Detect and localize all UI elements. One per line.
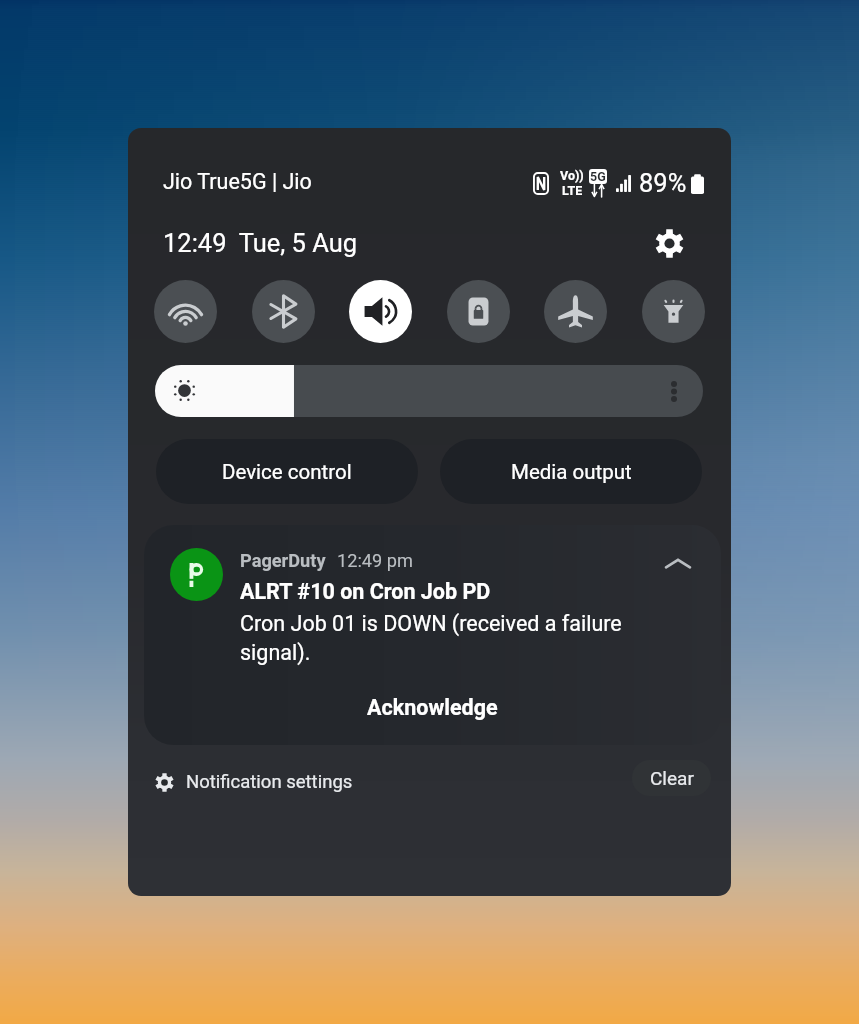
staticText: LTE bbox=[562, 183, 583, 198]
button[interactable]: Clear bbox=[632, 760, 711, 796]
button[interactable]: Settings bbox=[651, 225, 687, 261]
button[interactable]: Wi-Fi bbox=[154, 280, 217, 343]
button[interactable]: Brightness bbox=[155, 365, 703, 417]
staticText: Device control bbox=[222, 460, 352, 484]
staticText: Notification settings bbox=[186, 771, 353, 793]
staticText: 12:49 Tue, 5 Aug bbox=[163, 228, 358, 258]
staticText: Jio True5G | Jio bbox=[163, 169, 312, 194]
staticText: ALRT #10 on Cron Job PD bbox=[240, 579, 491, 604]
button[interactable]: Screen lock bbox=[447, 280, 510, 343]
button[interactable]: Acknowledge bbox=[144, 683, 721, 731]
button[interactable]: Airplane mode bbox=[544, 280, 607, 343]
button[interactable]: Flashlight bbox=[642, 280, 705, 343]
staticText: PagerDuty bbox=[240, 550, 326, 571]
staticText: Acknowledge bbox=[367, 695, 498, 720]
button[interactable]: Bluetooth bbox=[252, 280, 315, 343]
staticText: 89% bbox=[639, 168, 687, 198]
staticText: Clear bbox=[650, 767, 694, 789]
staticText: 5G bbox=[590, 169, 606, 184]
button[interactable]: Collapse bbox=[660, 546, 696, 582]
staticText: Cron Job 01 is DOWN (received a failure … bbox=[240, 611, 640, 665]
button[interactable]: Media output bbox=[440, 439, 702, 504]
staticText: Vo)) bbox=[560, 168, 584, 183]
button[interactable]: Notification settings bbox=[155, 760, 353, 804]
button[interactable]: Sound bbox=[349, 280, 412, 343]
button[interactable]: Device control bbox=[156, 439, 418, 504]
button[interactable]: PagerDuty bbox=[144, 525, 721, 745]
staticText: 12:49 pm bbox=[337, 550, 413, 571]
staticText: Media output bbox=[511, 460, 632, 484]
